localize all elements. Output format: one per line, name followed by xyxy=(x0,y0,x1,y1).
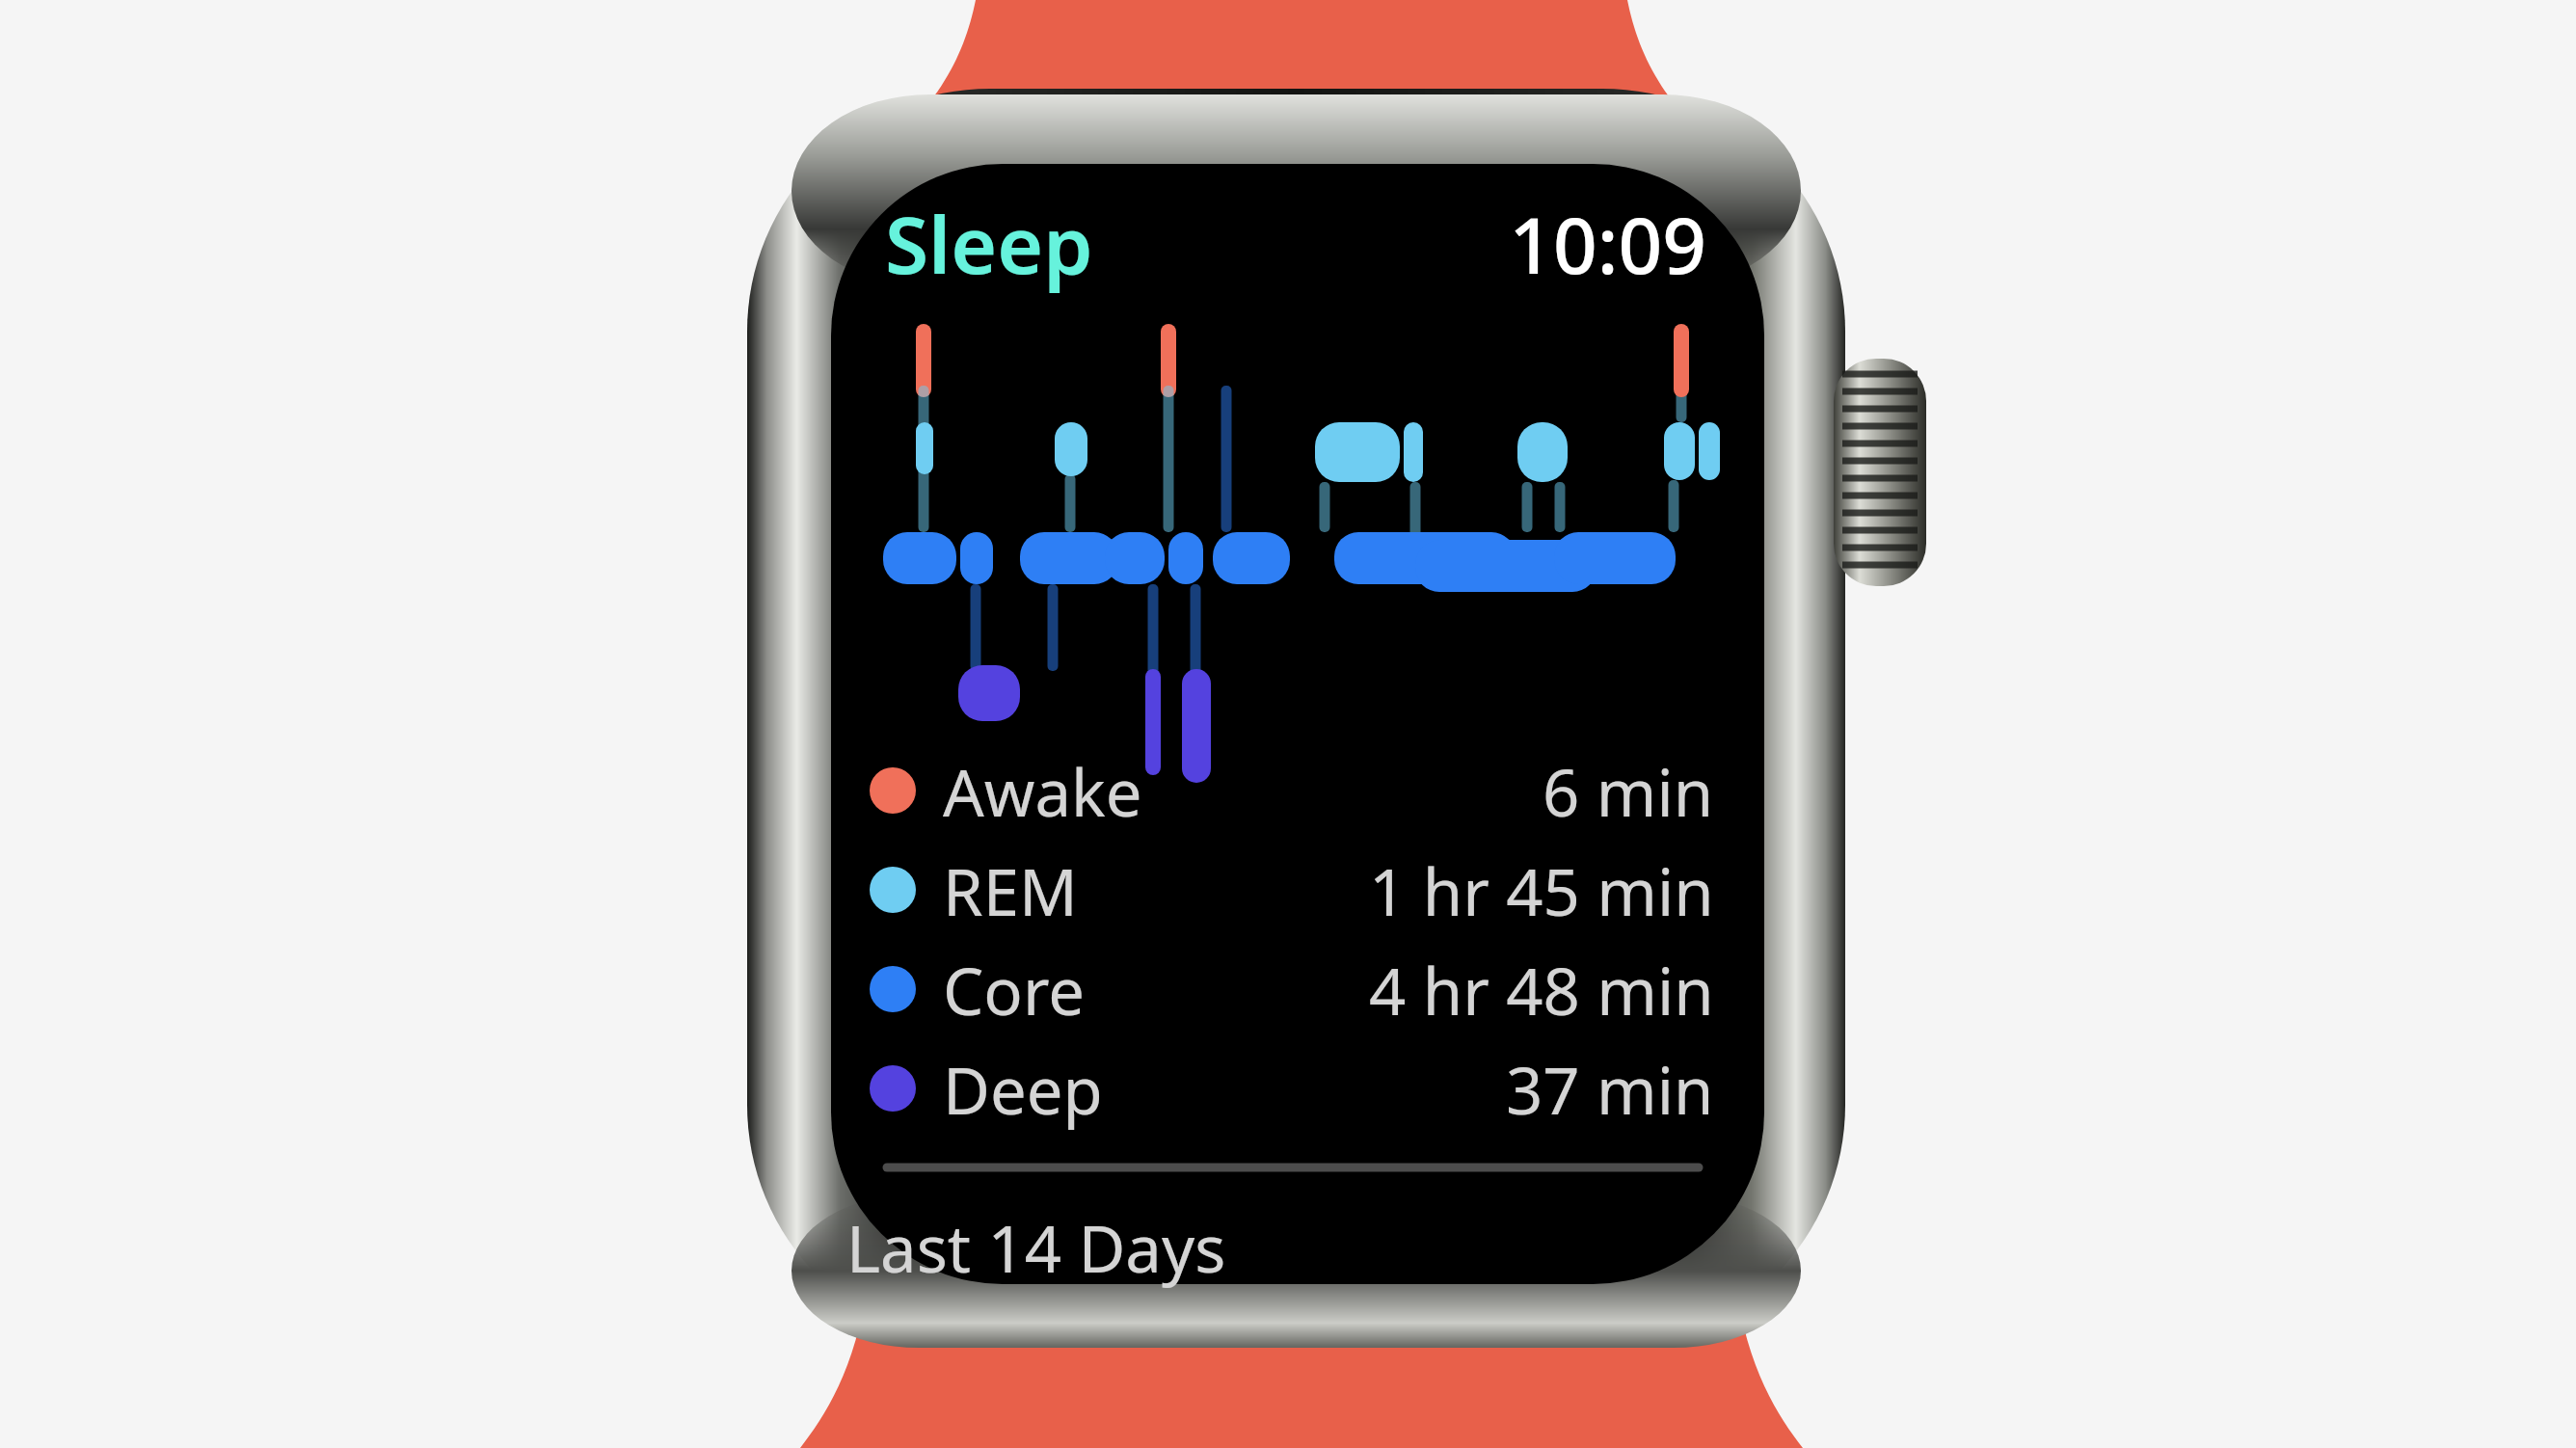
button[interactable]: Core xyxy=(870,943,1714,1035)
button[interactable]: Awake xyxy=(870,744,1714,837)
button[interactable]: REM xyxy=(870,844,1714,936)
staticText: Last 14 Days xyxy=(846,1203,1226,1291)
staticText: Awake xyxy=(943,747,1142,835)
staticText: 10:09 xyxy=(1388,191,1706,295)
button[interactable]: Sleep xyxy=(885,189,1213,297)
staticText: 37 min xyxy=(1506,1045,1714,1133)
button[interactable]: Last 14 Days xyxy=(846,1203,1714,1296)
staticText: 6 min xyxy=(1543,747,1714,835)
staticText: 4 hr 48 min xyxy=(1369,946,1714,1033)
staticText: Sleep xyxy=(885,189,1093,297)
staticText: 1 hr 45 min xyxy=(1369,846,1714,934)
staticText: Core xyxy=(943,946,1085,1033)
staticText: REM xyxy=(943,846,1078,934)
button[interactable]: Deep xyxy=(870,1042,1714,1135)
staticText: Deep xyxy=(943,1045,1103,1133)
